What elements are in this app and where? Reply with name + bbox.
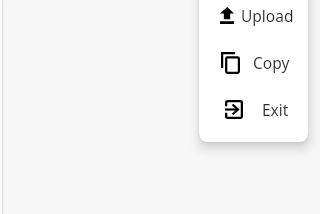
staticText: Upload (241, 5, 294, 26)
staticText: Exit (262, 99, 289, 120)
button[interactable]: Exit (199, 86, 308, 133)
other: Exit (225, 100, 243, 119)
button[interactable]: Upload (199, 0, 308, 39)
other: Copy (221, 52, 240, 74)
button[interactable]: Copy (199, 39, 308, 86)
staticText: Copy (253, 52, 290, 73)
other: Upload (220, 7, 234, 24)
